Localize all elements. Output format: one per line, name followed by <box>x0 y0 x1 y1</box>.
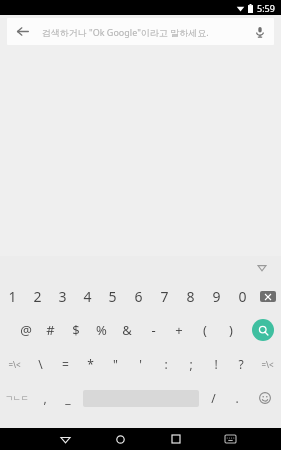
staticText: 9 <box>212 287 221 306</box>
button[interactable]: Back <box>38 428 93 450</box>
staticText: 1 <box>8 287 17 306</box>
button[interactable]: * <box>78 347 103 381</box>
staticText: 5:59 <box>257 2 275 14</box>
staticText: = <box>62 356 69 372</box>
button[interactable]: / <box>201 381 225 415</box>
button[interactable]: _ <box>56 381 80 415</box>
button[interactable]: Emoji <box>249 381 281 415</box>
staticText: 4 <box>83 287 92 306</box>
button[interactable]: Search <box>252 319 274 341</box>
button[interactable]: =\< <box>0 347 28 381</box>
button[interactable]: =\< <box>253 347 281 381</box>
button[interactable]: Back <box>7 18 274 45</box>
button[interactable]: 7 <box>151 279 177 313</box>
staticText: # <box>46 321 55 339</box>
staticText: . <box>235 390 239 406</box>
staticText: =\< <box>261 359 274 370</box>
button[interactable]: Backspace <box>255 279 281 313</box>
button[interactable]: Voice search <box>246 18 274 45</box>
button[interactable]: 9 <box>203 279 229 313</box>
staticText: =\< <box>8 359 21 370</box>
button[interactable]: ' <box>128 347 153 381</box>
button[interactable]: 8 <box>177 279 203 313</box>
button[interactable]: ? <box>228 347 253 381</box>
staticText: ( <box>203 321 207 339</box>
staticText: ! <box>214 356 218 372</box>
button[interactable]: 2 <box>25 279 50 313</box>
button[interactable]: 5 <box>100 279 125 313</box>
staticText: - <box>151 321 156 339</box>
staticText: & <box>122 321 132 339</box>
staticText: ; <box>189 356 193 372</box>
button[interactable]: Recents <box>148 428 203 450</box>
staticText: 6 <box>134 287 143 306</box>
button[interactable]: , <box>33 381 56 415</box>
button[interactable]: . <box>225 381 249 415</box>
staticText: ? <box>238 356 244 372</box>
button[interactable]: $ <box>63 313 88 347</box>
staticText: ' <box>139 356 142 372</box>
button[interactable]: \ <box>28 347 53 381</box>
button[interactable]: : <box>153 347 178 381</box>
button[interactable]: 1 <box>0 279 25 313</box>
button[interactable]: - <box>140 313 166 347</box>
button[interactable]: ! <box>203 347 228 381</box>
staticText: : <box>164 356 168 372</box>
staticText: / <box>211 390 216 406</box>
button[interactable]: Hide suggestions <box>253 259 271 277</box>
button[interactable]: Switch keyboard <box>203 428 258 450</box>
button[interactable]: Back <box>7 18 37 45</box>
button[interactable]: 6 <box>125 279 151 313</box>
staticText: + <box>175 321 183 339</box>
button[interactable]: 4 <box>75 279 100 313</box>
staticText: 2 <box>33 287 42 306</box>
staticText: " <box>113 356 118 372</box>
staticText: _ <box>65 390 71 406</box>
button[interactable]: 0 <box>229 279 255 313</box>
button[interactable]: % <box>88 313 114 347</box>
button[interactable]: + <box>166 313 192 347</box>
staticText: 5 <box>108 287 117 306</box>
staticText: $ <box>72 321 80 339</box>
staticText: * <box>87 356 94 372</box>
button[interactable]: @ <box>13 313 38 347</box>
staticText: % <box>96 321 107 339</box>
staticText: 0 <box>238 287 247 306</box>
staticText: \ <box>38 356 43 372</box>
staticText: 7 <box>160 287 169 306</box>
button[interactable]: Home <box>93 428 148 450</box>
button[interactable]: & <box>114 313 140 347</box>
button[interactable]: " <box>103 347 128 381</box>
button[interactable]: 3 <box>50 279 75 313</box>
staticText: ) <box>229 321 233 339</box>
staticText: 8 <box>186 287 195 306</box>
staticText: @ <box>20 321 32 339</box>
button[interactable]: # <box>38 313 63 347</box>
staticText: 검색하거나 "Ok Google"이라고 말하세요. <box>37 26 246 38</box>
staticText: , <box>43 390 47 406</box>
button[interactable]: ; <box>178 347 203 381</box>
button[interactable]: ( <box>192 313 218 347</box>
staticText: 3 <box>58 287 67 306</box>
staticText: ㄱㄴㄷ <box>5 393 29 403</box>
button[interactable]: ㄱㄴㄷ <box>0 381 33 415</box>
button[interactable]: = <box>53 347 78 381</box>
button[interactable]: ) <box>218 313 244 347</box>
